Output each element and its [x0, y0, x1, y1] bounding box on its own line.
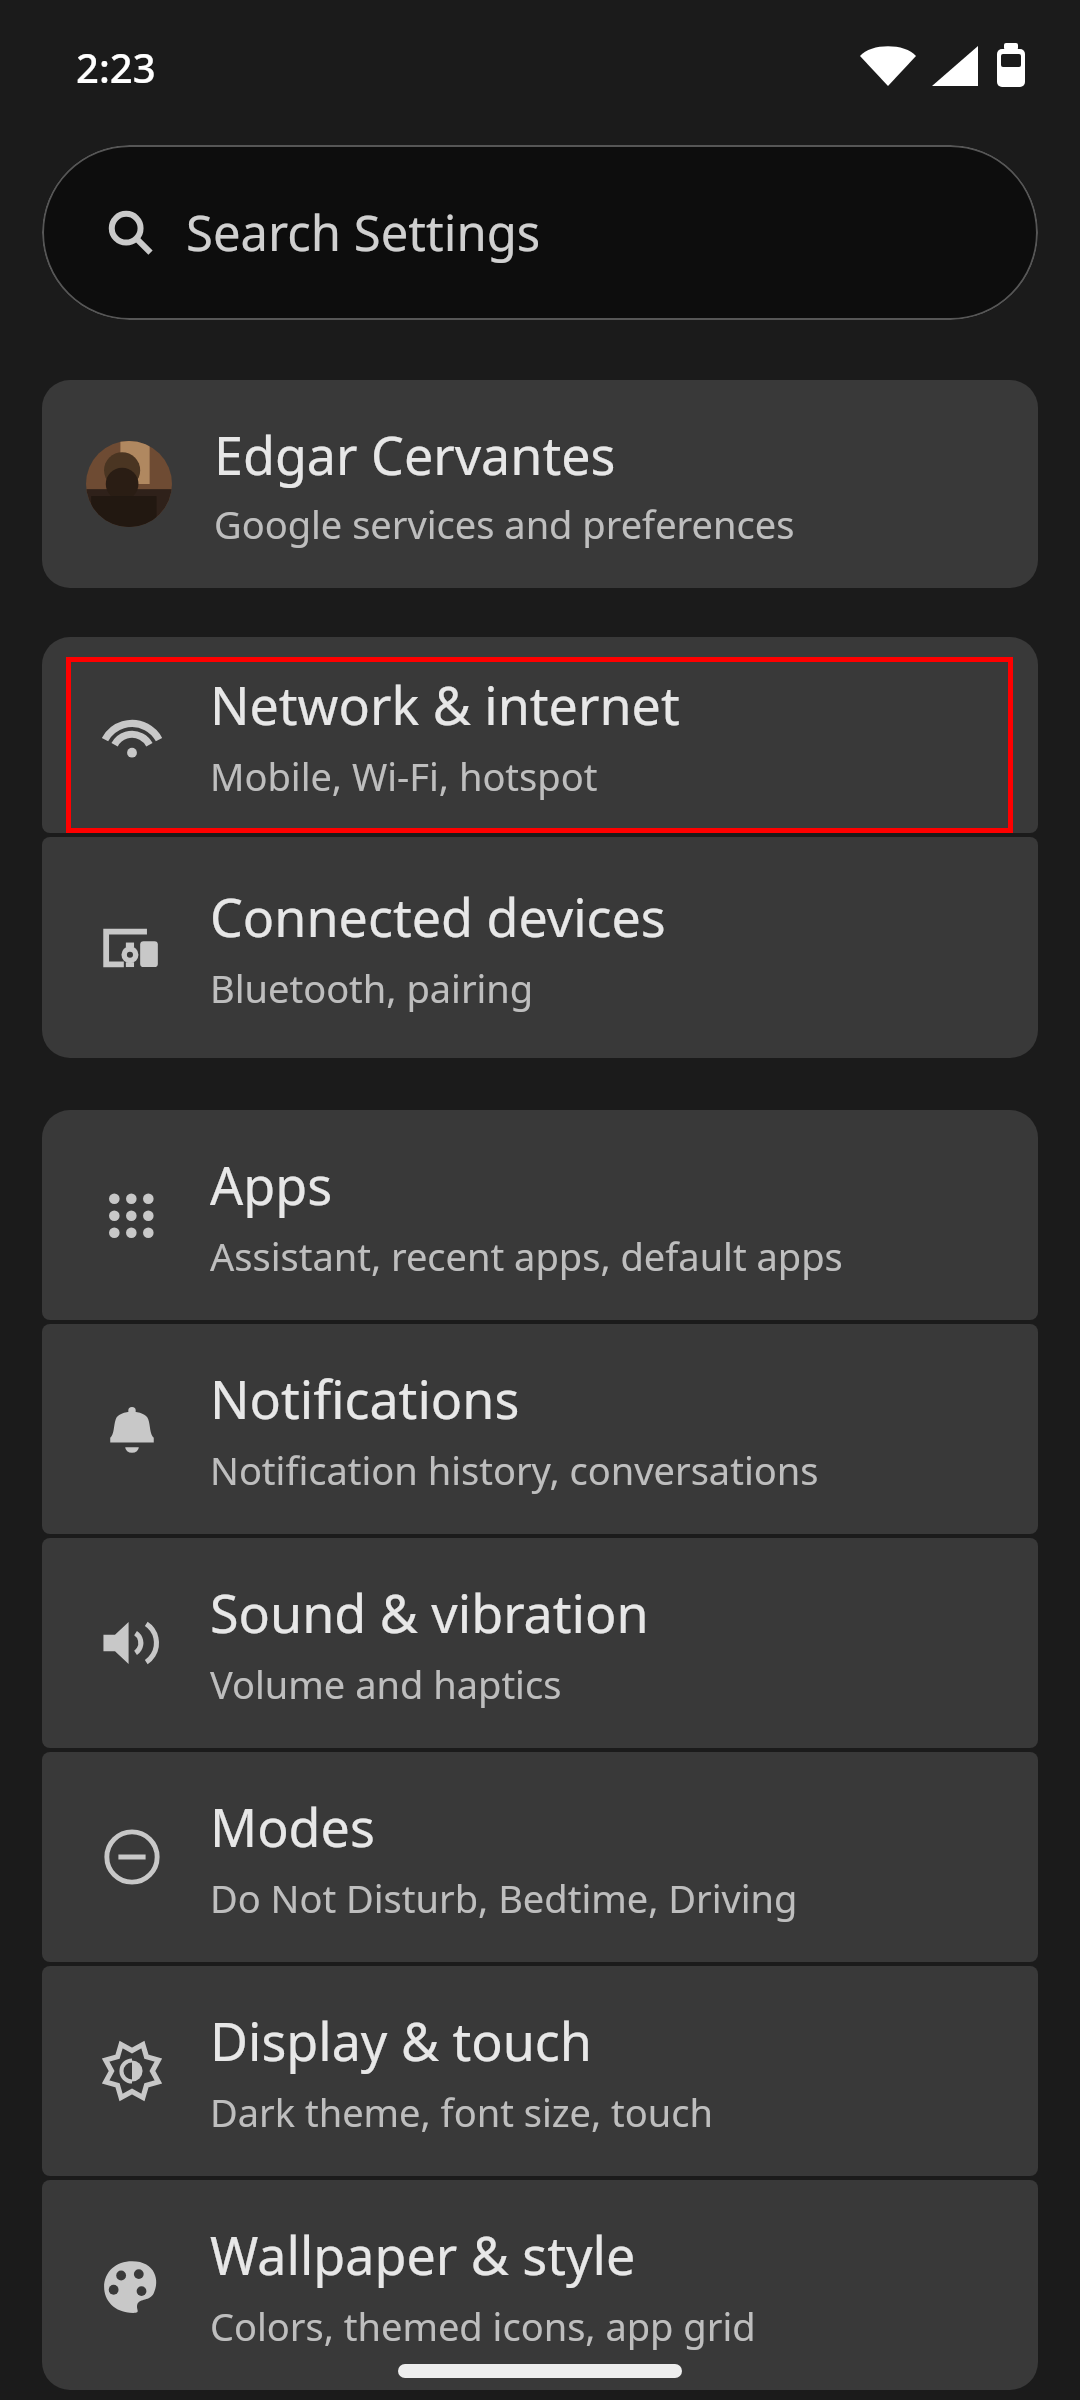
staticText: Display & touch [210, 2005, 592, 2076]
staticText: Search Settings [186, 199, 541, 266]
staticText: Notifications [210, 1363, 520, 1434]
staticText: Volume and haptics [210, 1658, 562, 1710]
staticText: 2:23 [76, 40, 156, 94]
staticText: Assistant, recent apps, default apps [210, 1230, 843, 1282]
button[interactable]: Apps [42, 1110, 1038, 1320]
button[interactable]: Modes [42, 1752, 1038, 1962]
staticText: Google services and preferences [214, 498, 795, 550]
staticText: Apps [210, 1149, 333, 1220]
button[interactable]: Wallpaper & style [42, 2180, 1038, 2390]
staticText: Wallpaper & style [210, 2219, 636, 2290]
button[interactable]: Search Settings [42, 145, 1038, 320]
button[interactable]: Display & touch [42, 1966, 1038, 2176]
button[interactable]: Network & internet [42, 637, 1038, 833]
staticText: Sound & vibration [210, 1577, 649, 1648]
staticText: Dark theme, font size, touch [210, 2086, 714, 2138]
button[interactable]: Sound & vibration [42, 1538, 1038, 1748]
staticText: Edgar Cervantes [214, 419, 616, 490]
button[interactable]: Connected devices [42, 837, 1038, 1058]
button[interactable]: Edgar Cervantes [42, 380, 1038, 588]
staticText: Connected devices [210, 881, 666, 952]
staticText: Mobile, Wi-Fi, hotspot [210, 750, 598, 802]
staticText: Bluetooth, pairing [210, 962, 534, 1014]
staticText: Modes [210, 1791, 375, 1862]
staticText: Do Not Disturb, Bedtime, Driving [210, 1872, 798, 1924]
staticText: Notification history, conversations [210, 1444, 819, 1496]
staticText: Network & internet [210, 669, 680, 740]
button[interactable]: Notifications [42, 1324, 1038, 1534]
staticText: Colors, themed icons, app grid [210, 2300, 756, 2352]
